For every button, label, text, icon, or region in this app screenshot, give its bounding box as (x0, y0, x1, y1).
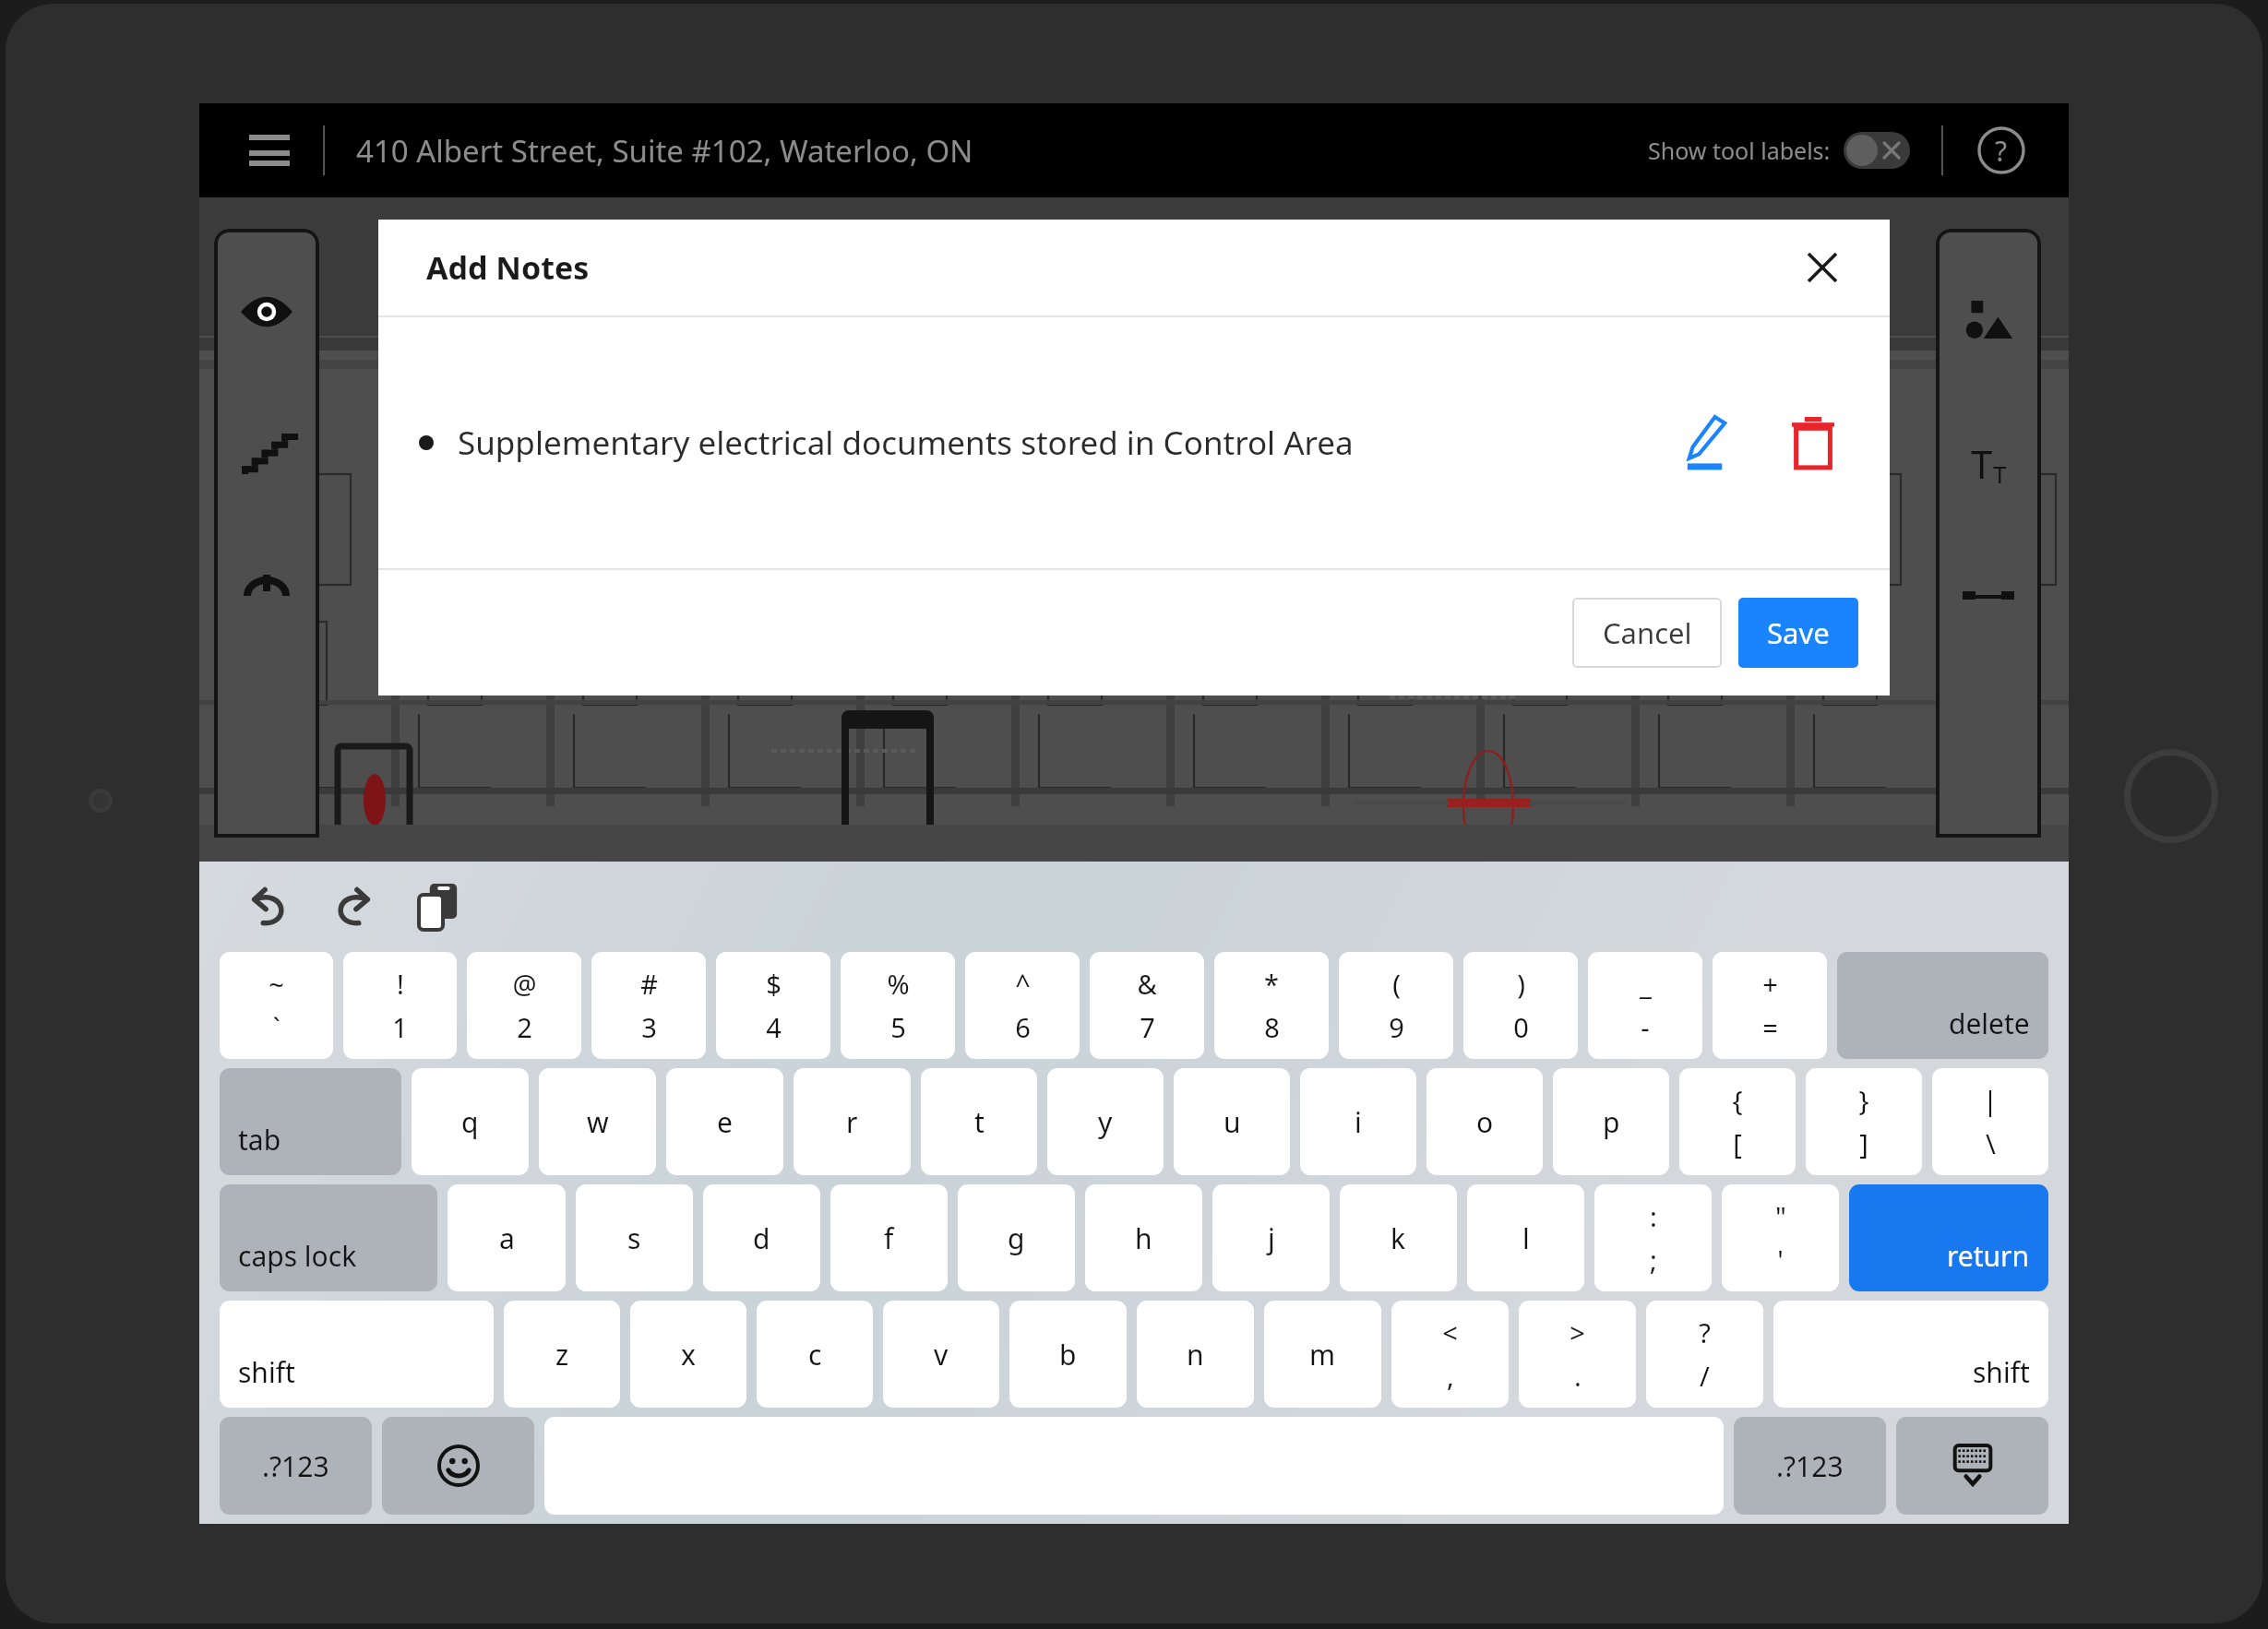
button[interactable]: a (448, 1184, 566, 1291)
button[interactable]: r (794, 1068, 911, 1175)
button[interactable]: ~ (220, 952, 333, 1059)
staticText: ] (1859, 1125, 1868, 1161)
button[interactable]: @ (467, 952, 581, 1059)
button[interactable]: .?123 (1734, 1417, 1886, 1515)
button[interactable]: j (1212, 1184, 1330, 1291)
button[interactable]: Paste (404, 873, 472, 941)
button[interactable]: & (1090, 952, 1204, 1059)
staticText: _ (1640, 966, 1652, 1002)
button[interactable]: _ (1588, 952, 1702, 1059)
button[interactable]: # (591, 952, 706, 1059)
staticText: ~ (269, 966, 284, 1002)
button[interactable]: b (1009, 1301, 1127, 1408)
button[interactable]: Show tool labels toggle (1844, 132, 1910, 169)
staticText: b (1059, 1336, 1077, 1373)
button[interactable]: w (539, 1068, 656, 1175)
staticText: l (1522, 1219, 1530, 1257)
button[interactable]: ( (1339, 952, 1453, 1059)
button[interactable]: | (1932, 1068, 2048, 1175)
button[interactable]: Undo (234, 873, 303, 941)
button[interactable]: m (1264, 1301, 1381, 1408)
staticText: .?123 (1776, 1447, 1844, 1485)
button[interactable]: tab (220, 1068, 401, 1175)
staticText: e (717, 1103, 733, 1141)
button[interactable]: < (1391, 1301, 1509, 1408)
button[interactable]: .?123 (220, 1417, 372, 1515)
button[interactable]: } (1806, 1068, 1922, 1175)
button[interactable]: s (576, 1184, 693, 1291)
staticText: ' (1777, 1242, 1784, 1278)
staticText: n (1187, 1336, 1204, 1373)
button[interactable]: return (1849, 1184, 2048, 1291)
button[interactable]: Save (1738, 598, 1858, 668)
button[interactable]: v (883, 1301, 999, 1408)
button[interactable]: ! (343, 952, 457, 1059)
button[interactable]: h (1085, 1184, 1202, 1291)
button[interactable]: delete (1837, 952, 2048, 1059)
staticText: T (1993, 458, 2007, 490)
button[interactable]: g (958, 1184, 1075, 1291)
staticText: Add Notes (426, 246, 590, 289)
button[interactable]: ) (1463, 952, 1578, 1059)
staticText: ? (1699, 1314, 1711, 1350)
button[interactable]: l (1467, 1184, 1584, 1291)
button[interactable]: Measure (1948, 565, 2029, 646)
button[interactable]: t (921, 1068, 1037, 1175)
staticText: ^ (1015, 966, 1031, 1002)
button[interactable]: q (412, 1068, 529, 1175)
button[interactable]: u (1174, 1068, 1290, 1175)
button[interactable]: shift (220, 1301, 494, 1408)
staticText: j (1268, 1219, 1275, 1257)
staticText: tab (238, 1121, 281, 1159)
button[interactable]: i (1300, 1068, 1416, 1175)
button[interactable]: n (1137, 1301, 1254, 1408)
button[interactable]: Stairs (226, 413, 307, 494)
button[interactable]: { (1679, 1068, 1796, 1175)
button[interactable]: e (666, 1068, 783, 1175)
button[interactable]: Location (226, 555, 307, 636)
button[interactable]: " (1722, 1184, 1839, 1291)
button[interactable]: + (1713, 952, 1827, 1059)
button[interactable]: Emoji (382, 1417, 534, 1515)
button[interactable]: caps lock (220, 1184, 437, 1291)
button[interactable]: z (504, 1301, 620, 1408)
staticText: h (1135, 1219, 1152, 1257)
staticText: < (1442, 1314, 1458, 1350)
button[interactable]: Menu (236, 117, 303, 184)
button[interactable]: Help (1973, 122, 2030, 179)
button[interactable]: p (1553, 1068, 1669, 1175)
button[interactable]: > (1519, 1301, 1636, 1408)
button[interactable]: k (1340, 1184, 1457, 1291)
button[interactable]: Shapes (1948, 280, 2029, 362)
button[interactable]: : (1594, 1184, 1712, 1291)
button[interactable]: f (830, 1184, 948, 1291)
button[interactable]: ^ (965, 952, 1080, 1059)
staticText: v (934, 1336, 949, 1373)
button[interactable]: % (841, 952, 955, 1059)
button[interactable]: * (1214, 952, 1329, 1059)
button[interactable]: Close (1796, 241, 1849, 294)
button[interactable]: Cancel (1572, 598, 1722, 668)
button[interactable]: x (630, 1301, 746, 1408)
staticText: .?123 (262, 1447, 329, 1485)
staticText: p (1603, 1103, 1620, 1141)
staticText: \ (1986, 1125, 1996, 1161)
button[interactable]: Edit note (1670, 407, 1742, 479)
button[interactable]: shift (1773, 1301, 2048, 1408)
button[interactable]: y (1047, 1068, 1164, 1175)
button[interactable]: Hide keyboard (1896, 1417, 2048, 1515)
button[interactable]: Delete note (1777, 407, 1849, 479)
button[interactable]: Text size (1948, 422, 2029, 504)
staticText: delete (1949, 1005, 2030, 1042)
button[interactable]: Home (2124, 749, 2218, 843)
staticText: : (1650, 1198, 1657, 1234)
staticText: 410 Albert Street, Suite #102, Waterloo,… (356, 130, 973, 172)
button[interactable]: Redo (319, 873, 388, 941)
button[interactable]: $ (716, 952, 830, 1059)
button[interactable]: o (1426, 1068, 1543, 1175)
button[interactable]: c (757, 1301, 873, 1408)
button[interactable]: d (703, 1184, 820, 1291)
button[interactable]: ? (1646, 1301, 1763, 1408)
button[interactable]: Visibility (226, 271, 307, 352)
